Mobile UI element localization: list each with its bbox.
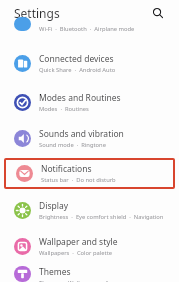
other: Themes (14, 266, 31, 282)
staticText: Brightness · Eye comfort shield · Naviga… (39, 213, 171, 221)
staticText: Connected devices (39, 53, 114, 65)
staticText: Notifications (41, 163, 92, 175)
button[interactable]: Themes (0, 266, 179, 282)
staticText: Wallpapers · Color palette (39, 249, 113, 257)
other: Display (14, 202, 31, 219)
button[interactable]: Modes and Routines (0, 86, 179, 119)
button[interactable]: Wallpaper and style (0, 230, 179, 263)
other: Notifications (16, 165, 33, 182)
staticText: Wallpaper and style (39, 236, 118, 248)
staticText: Display (39, 200, 68, 212)
other: Sounds and vibration (14, 130, 31, 147)
other: Wallpaper and style (14, 238, 31, 255)
other: Connections (14, 17, 31, 31)
staticText: Sound mode · Ringtone (39, 141, 106, 149)
staticText: Status bar · Do not disturb (41, 176, 116, 184)
staticText: Quick Share · Android Auto (39, 66, 116, 74)
button[interactable]: Display (0, 194, 179, 227)
staticText: Themes (39, 266, 71, 278)
staticText: Wi-Fi · Bluetooth · Airplane mode (39, 25, 135, 33)
staticText: Sounds and vibration (39, 128, 124, 140)
button[interactable]: Connections (0, 26, 179, 40)
staticText: Themes · Wallpapers · Icons (39, 279, 121, 282)
button[interactable]: Notifications (6, 160, 173, 187)
staticText: Modes and Routines (39, 92, 121, 104)
other: Modes and Routines (14, 94, 31, 111)
other: Connected devices (14, 55, 31, 72)
button[interactable]: Sounds and vibration (0, 122, 179, 155)
staticText: Settings (14, 5, 60, 21)
button[interactable]: Connected devices (0, 47, 179, 80)
button[interactable]: Search (149, 4, 167, 22)
staticText: Modes · Routines (39, 105, 89, 113)
